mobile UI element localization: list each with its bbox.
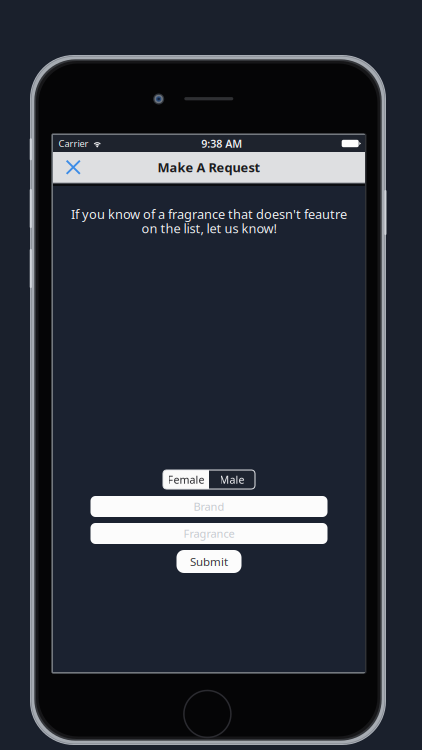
button[interactable]: Submit	[176, 550, 241, 573]
button[interactable]: Male	[209, 470, 255, 489]
button[interactable]: Close	[53, 153, 93, 182]
staticText: Make A Request	[157, 158, 260, 176]
staticText: Fragrance	[183, 526, 234, 541]
button[interactable]: Female	[163, 470, 209, 489]
staticText: on the list, let us know!	[141, 220, 276, 237]
staticText: Carrier	[58, 137, 88, 150]
staticText: Submit	[190, 554, 228, 569]
staticText: If you know of a fragrance that doesn't …	[71, 205, 347, 223]
staticText: Brand	[193, 499, 224, 514]
staticText: Female	[167, 472, 204, 487]
staticText: Male	[219, 472, 244, 487]
staticText: 9:38 AM	[201, 136, 242, 151]
